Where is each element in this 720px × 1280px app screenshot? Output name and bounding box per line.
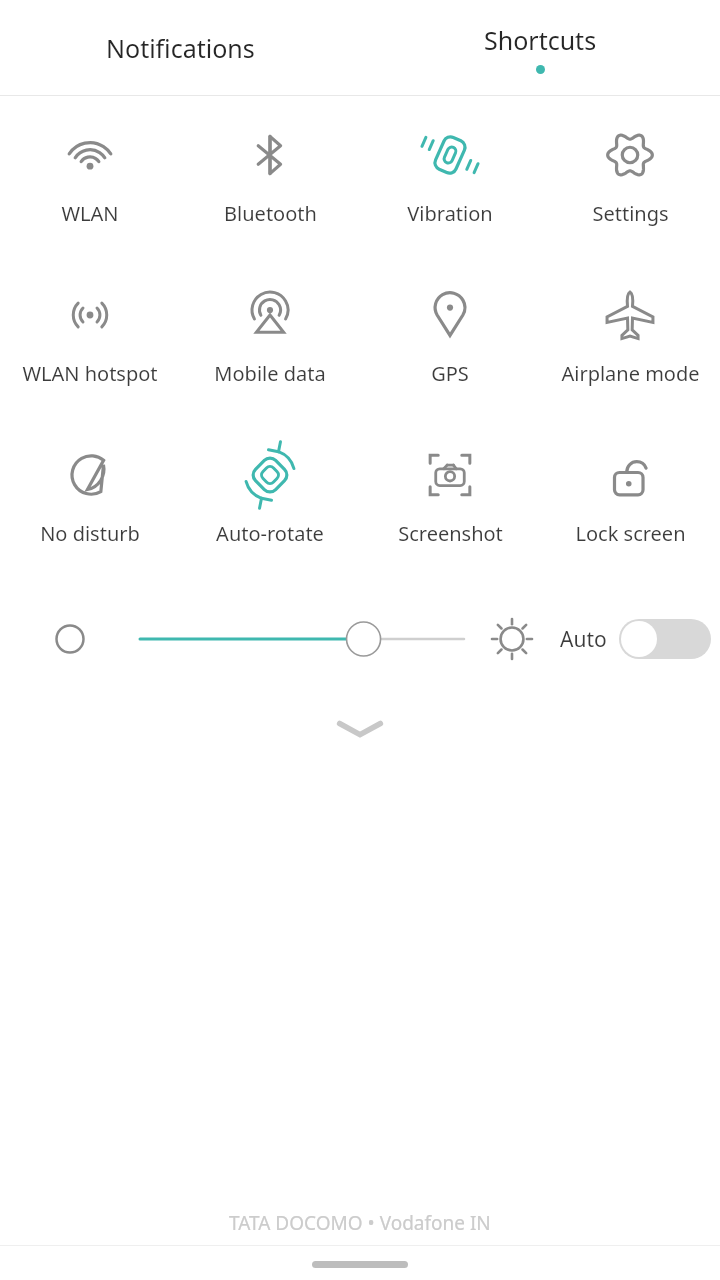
button[interactable]: Bluetooth [180,106,360,266]
staticText: TATA DOCOMO • Vodafone IN [229,1210,491,1236]
button[interactable]: Shortcuts [360,0,720,96]
staticText: Notifications [106,31,255,65]
staticText: WLAN hotspot [22,360,158,387]
staticText: Mobile data [214,360,326,387]
button[interactable]: Auto-rotate [180,426,360,586]
staticText: Lock screen [575,520,686,547]
staticText: Airplane mode [561,360,700,387]
button[interactable] [140,608,464,670]
staticText: Screenshot [398,520,503,547]
button[interactable]: Airplane mode [540,266,720,426]
button[interactable]: Notifications [0,0,360,96]
staticText: Auto-rotate [216,520,324,547]
staticText: No disturb [40,520,140,547]
button[interactable]: WLAN hotspot [0,266,180,426]
staticText: Settings [592,200,669,227]
button[interactable]: WLAN [0,106,180,266]
button[interactable]: Screenshot [360,426,540,586]
staticText: Shortcuts [484,23,597,57]
staticText: Auto [560,625,607,654]
button[interactable]: Mobile data [180,266,360,426]
staticText: WLAN [61,200,119,227]
staticText: GPS [431,360,469,387]
staticText: Vibration [407,200,493,227]
staticText: Bluetooth [224,200,317,227]
button[interactable]: Auto [560,608,720,670]
button[interactable]: Settings [540,106,720,266]
button[interactable]: Lock screen [540,426,720,586]
button[interactable]: GPS [360,266,540,426]
button[interactable]: Vibration [360,106,540,266]
button[interactable]: No disturb [0,426,180,586]
button[interactable]: Expand [325,698,395,758]
